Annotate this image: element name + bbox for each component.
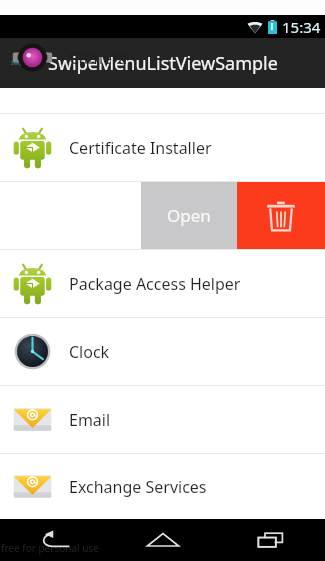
button[interactable]: App icon bbox=[9, 54, 41, 72]
button[interactable]: Home bbox=[109, 519, 217, 561]
staticText: 15:34 bbox=[282, 17, 321, 37]
button[interactable]: Package Access Helper bbox=[0, 250, 325, 317]
staticText: Package Access Helper bbox=[69, 273, 241, 295]
button[interactable]: Open bbox=[141, 182, 237, 249]
button[interactable]: Certificate Installer bbox=[0, 114, 325, 181]
staticText: SwipeMenuListViewSample bbox=[48, 51, 278, 76]
staticText: SwipeMenu bbox=[11, 60, 40, 67]
staticText: free for personal use bbox=[1, 541, 99, 555]
staticText: Email bbox=[69, 409, 111, 431]
button[interactable]: Exchange Services bbox=[0, 454, 325, 519]
button[interactable]: Back bbox=[0, 519, 109, 561]
button[interactable]: Email bbox=[0, 386, 325, 453]
button[interactable]: Recents bbox=[217, 519, 325, 561]
button[interactable]: Clock bbox=[0, 318, 325, 385]
staticText: Open bbox=[167, 204, 211, 227]
staticText: Certificate Installer bbox=[69, 137, 212, 159]
staticText: Camera bbox=[69, 47, 128, 69]
staticText: Exchange Services bbox=[69, 476, 207, 498]
staticText: Clock bbox=[69, 341, 110, 363]
button[interactable]: Delete bbox=[237, 182, 325, 249]
